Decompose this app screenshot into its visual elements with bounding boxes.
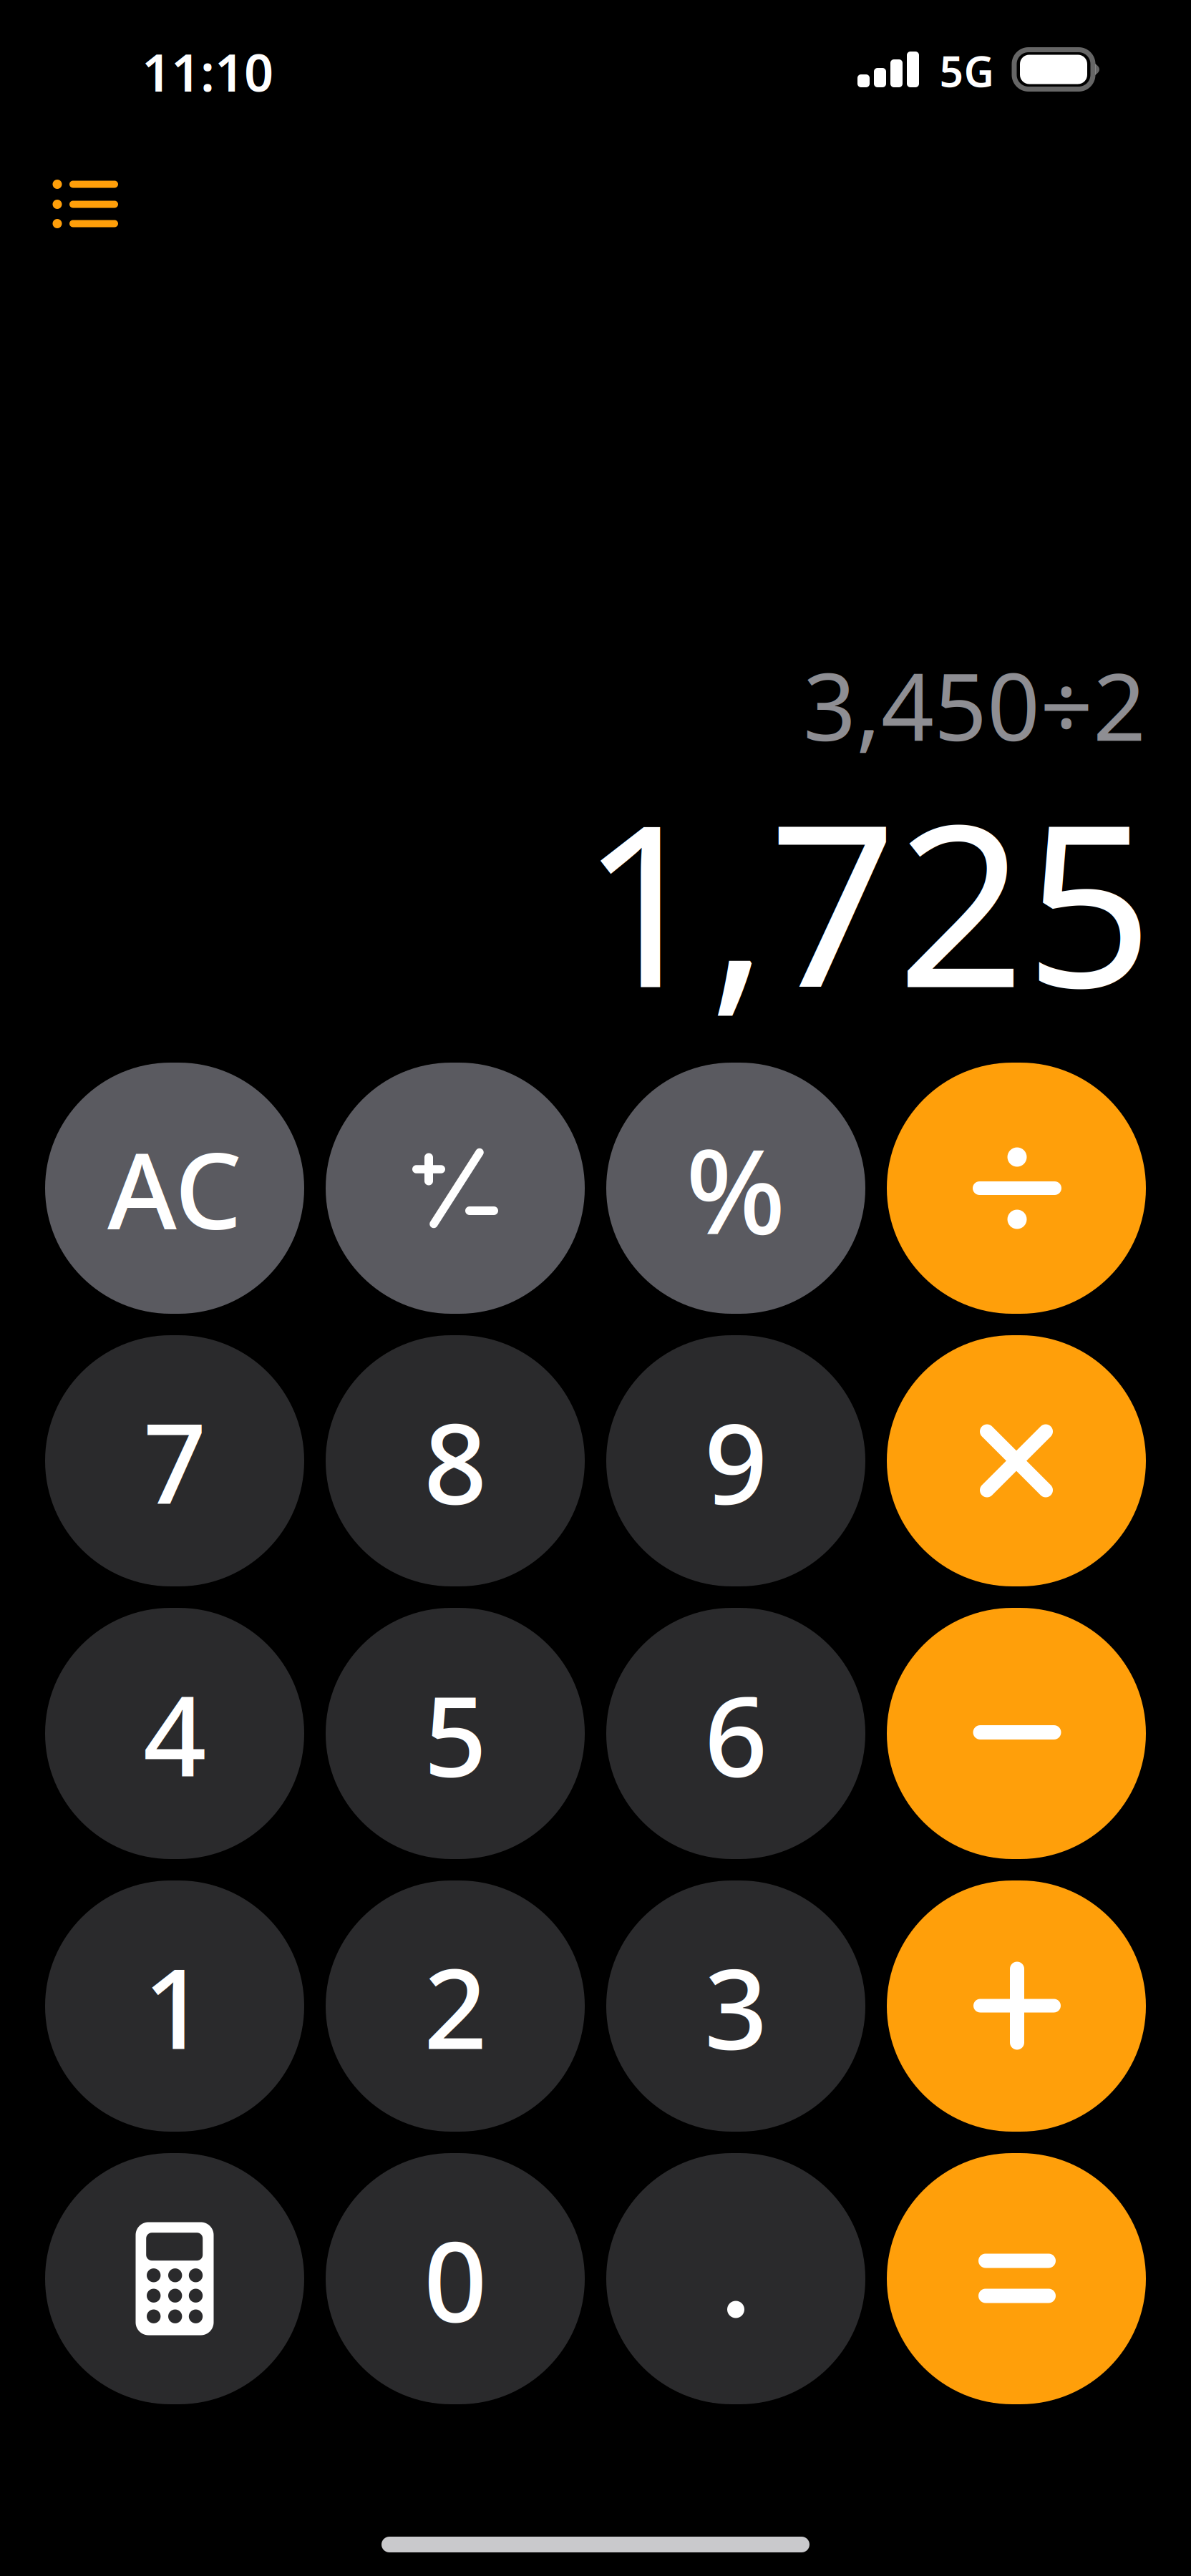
staticText: 11:10 <box>142 37 273 106</box>
staticText: AC <box>107 1118 242 1258</box>
button[interactable]: Equals <box>887 2153 1146 2404</box>
staticText: 8 <box>424 1387 487 1534</box>
button[interactable]: Divide <box>887 1063 1146 1314</box>
staticText: 2 <box>424 1933 487 2080</box>
staticText: 9 <box>704 1387 767 1534</box>
staticText: 6 <box>704 1660 767 1807</box>
button[interactable]: 7 <box>45 1335 304 1586</box>
staticText: 3,450÷2 <box>803 643 1146 766</box>
button[interactable]: Calculator modes <box>45 2153 304 2404</box>
button[interactable]: Subtract <box>887 1608 1146 1859</box>
button[interactable]: 3 <box>606 1880 865 2132</box>
button[interactable]: 6 <box>606 1608 865 1859</box>
button[interactable]: Multiply <box>887 1335 1146 1586</box>
button[interactable]: Add <box>887 1880 1146 2132</box>
button[interactable]: Clear <box>45 1063 304 1314</box>
staticText: 5G <box>939 43 995 99</box>
staticText: 3 <box>704 1933 767 2080</box>
staticText: 1 <box>143 1933 206 2080</box>
button[interactable]: Decimal point <box>606 2153 865 2404</box>
staticText: 5 <box>424 1660 487 1807</box>
button[interactable]: 1 <box>45 1880 304 2132</box>
button[interactable]: 5 <box>326 1608 585 1859</box>
staticText: 0 <box>424 2205 487 2352</box>
button[interactable]: Toggle sign <box>326 1063 585 1314</box>
staticText: 4 <box>143 1660 206 1807</box>
button[interactable]: Percent <box>606 1063 865 1314</box>
staticText: % <box>686 1110 786 1266</box>
button[interactable]: 0 <box>326 2153 585 2404</box>
button[interactable]: 4 <box>45 1608 304 1859</box>
staticText: 1,725 <box>580 751 1153 1049</box>
button[interactable]: History <box>29 152 147 270</box>
button[interactable]: 8 <box>326 1335 585 1586</box>
staticText: 7 <box>143 1387 206 1534</box>
button[interactable]: 9 <box>606 1335 865 1586</box>
button[interactable]: 2 <box>326 1880 585 2132</box>
